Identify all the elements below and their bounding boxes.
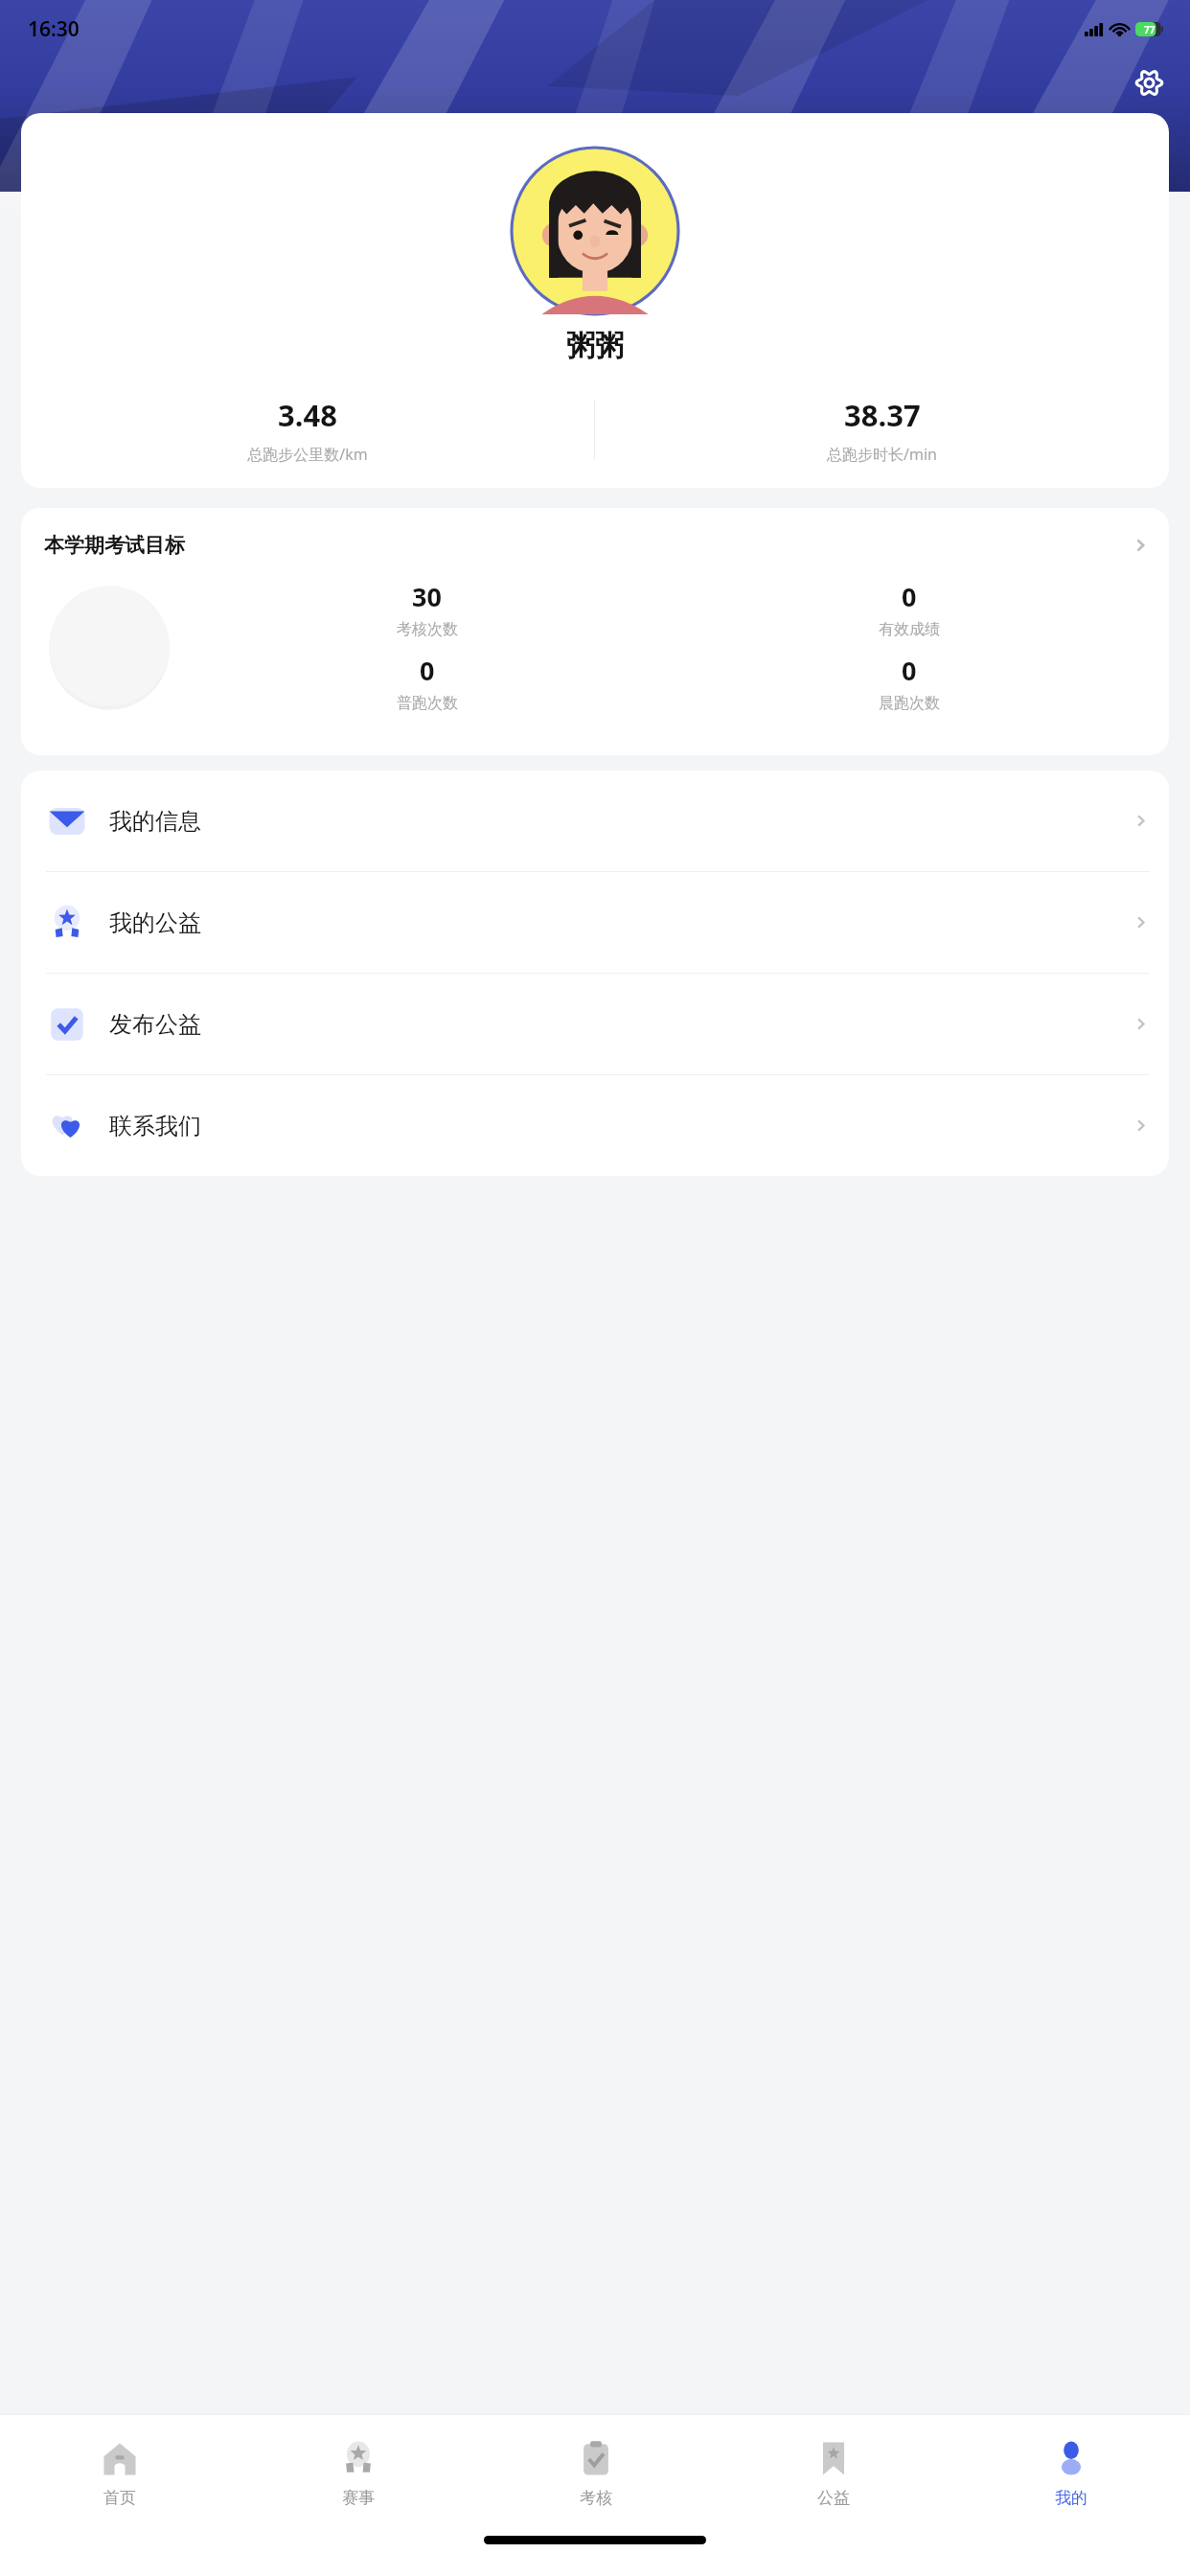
staticText: 我的: [1055, 2488, 1087, 2508]
button[interactable]: 我的: [952, 2415, 1190, 2530]
button[interactable]: 首页: [0, 2415, 239, 2530]
staticText: 有效成绩: [879, 620, 940, 639]
button[interactable]: 赛事: [239, 2415, 477, 2530]
staticText: 16:30: [28, 15, 80, 43]
staticText: 首页: [103, 2488, 136, 2508]
staticText: 晨跑次数: [879, 694, 940, 713]
staticText: 0: [902, 579, 917, 614]
staticText: 考核次数: [397, 620, 458, 639]
button[interactable]: 发布公益: [21, 974, 1169, 1074]
staticText: 粥粥: [566, 328, 624, 364]
button[interactable]: 粥粥: [21, 113, 1169, 488]
button[interactable]: 联系我们: [21, 1075, 1169, 1176]
button[interactable]: 考核: [477, 2415, 715, 2530]
button[interactable]: 公益: [715, 2415, 952, 2530]
staticText: 普跑次数: [397, 694, 458, 713]
staticText: 我的公益: [109, 908, 201, 937]
staticText: 30: [412, 579, 442, 614]
button[interactable]: Settings: [1128, 61, 1170, 103]
staticText: 联系我们: [109, 1112, 201, 1140]
staticText: 3.48: [278, 395, 337, 435]
staticText: 公益: [817, 2488, 850, 2508]
staticText: 本学期考试目标: [44, 533, 185, 558]
button[interactable]: 本学期考试目标: [21, 508, 1169, 755]
staticText: 77: [1144, 23, 1156, 36]
button[interactable]: 我的公益: [21, 872, 1169, 973]
staticText: 考核: [580, 2488, 612, 2508]
staticText: 我的信息: [109, 807, 201, 836]
staticText: 发布公益: [109, 1010, 201, 1039]
staticText: 总跑步公里数/km: [247, 444, 368, 465]
staticText: 38.37: [844, 395, 921, 435]
staticText: 0: [902, 653, 917, 688]
staticText: 赛事: [342, 2488, 375, 2508]
staticText: 总跑步时长/min: [827, 444, 937, 465]
button[interactable]: 我的信息: [21, 770, 1169, 871]
staticText: 0: [420, 653, 435, 688]
